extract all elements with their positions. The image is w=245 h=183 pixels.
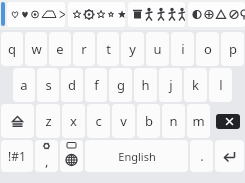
staticText: English [118, 149, 156, 164]
button[interactable]: English [85, 140, 188, 172]
staticText: z [45, 112, 52, 130]
button[interactable]: e [49, 32, 71, 66]
staticText: n [169, 112, 178, 130]
staticText: o [204, 40, 212, 58]
button[interactable]: x [62, 104, 85, 138]
button[interactable]: k [184, 68, 207, 102]
button[interactable]: a [13, 68, 35, 102]
button[interactable]: !#1 [1, 140, 33, 172]
button[interactable]: n [162, 104, 185, 138]
button[interactable]: Emoji suggestion [128, 2, 185, 27]
button[interactable]: f [85, 68, 107, 102]
staticText: y [129, 40, 136, 58]
button[interactable]: m [187, 104, 210, 138]
button[interactable]: Emoji suggestion [7, 2, 65, 27]
button[interactable]: Backspace [216, 114, 240, 129]
button[interactable]: t [97, 32, 119, 66]
button[interactable]: Shift [1, 104, 34, 138]
button[interactable]: p [221, 32, 244, 66]
button[interactable]: r [73, 32, 95, 66]
staticText: , [45, 152, 49, 170]
button[interactable]: o [196, 32, 219, 66]
button[interactable]: j [159, 68, 182, 102]
button[interactable]: z [36, 104, 60, 138]
staticText: j [169, 76, 173, 94]
staticText: a [20, 76, 28, 94]
button[interactable]: l [209, 68, 232, 102]
button[interactable]: Comma, settings [35, 140, 58, 172]
button[interactable]: Emoji suggestion [68, 2, 125, 27]
staticText: s [45, 76, 52, 94]
staticText: d [68, 76, 76, 94]
staticText: c [95, 112, 102, 130]
staticText: x [70, 112, 77, 130]
staticText: !#1 [8, 148, 26, 164]
button[interactable]: Enter [215, 140, 244, 172]
button[interactable]: . [190, 140, 213, 172]
button[interactable]: h [134, 68, 157, 102]
staticText: . [200, 147, 204, 165]
button[interactable]: u [146, 32, 169, 66]
button[interactable]: d [61, 68, 83, 102]
staticText: g [117, 76, 125, 94]
staticText: q [8, 40, 16, 58]
staticText: l [219, 76, 223, 94]
staticText: r [81, 40, 87, 58]
staticText: k [192, 76, 199, 94]
staticText: p [229, 40, 237, 58]
staticText: b [145, 112, 153, 130]
button[interactable]: q [1, 32, 23, 66]
button[interactable]: Change keyboard language [60, 140, 83, 172]
button[interactable]: w [25, 32, 47, 66]
staticText: e [56, 40, 64, 58]
staticText: m [192, 112, 205, 130]
button[interactable]: y [121, 32, 144, 66]
button[interactable]: Emoji suggestion [188, 2, 245, 27]
staticText: u [153, 40, 162, 58]
button[interactable]: i [171, 32, 194, 66]
button[interactable]: g [109, 68, 132, 102]
button[interactable]: s [37, 68, 59, 102]
button[interactable]: v [112, 104, 135, 138]
staticText: t [106, 40, 111, 58]
staticText: v [120, 112, 127, 130]
staticText: i [181, 40, 185, 58]
button[interactable]: b [137, 104, 160, 138]
staticText: f [94, 76, 99, 94]
staticText: h [141, 76, 150, 94]
button[interactable]: c [87, 104, 110, 138]
staticText: w [31, 40, 42, 58]
